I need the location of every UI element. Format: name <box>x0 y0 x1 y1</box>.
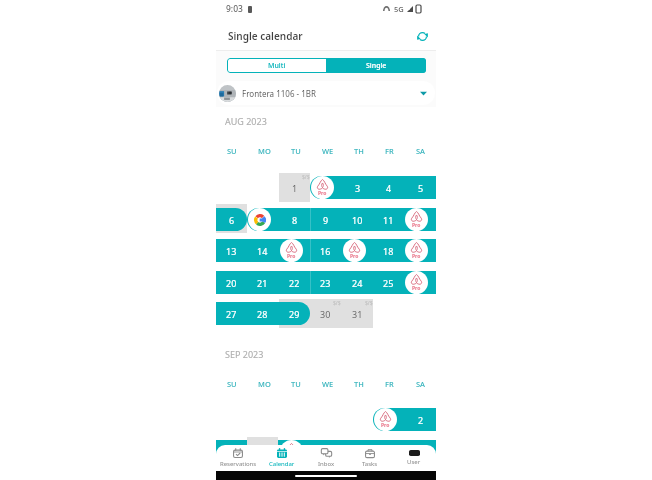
staticText: 14 <box>257 245 268 257</box>
staticText: $/$ <box>333 300 341 307</box>
staticText: Reservations <box>220 460 257 468</box>
staticText: Pro <box>350 253 359 260</box>
button[interactable]: Refresh <box>414 28 430 44</box>
button[interactable] <box>373 408 436 431</box>
staticText: SA <box>416 146 426 156</box>
staticText: Multi <box>268 61 286 71</box>
staticText: Calendar <box>269 460 295 468</box>
staticText: Pro <box>381 422 390 429</box>
staticText: Pro <box>287 253 296 260</box>
button[interactable]: Airbnb Pro booking <box>374 408 397 431</box>
button[interactable]: Calendar <box>260 445 304 471</box>
button[interactable]: User <box>392 445 436 471</box>
staticText: SU <box>227 146 237 156</box>
staticText: 20 <box>226 277 237 289</box>
staticText: Single <box>366 61 387 71</box>
staticText: TH <box>354 146 364 156</box>
staticText: Inbox <box>318 460 335 468</box>
button[interactable] <box>216 239 436 262</box>
staticText: Pro <box>412 253 421 260</box>
button[interactable]: Airbnb Pro booking <box>343 239 366 262</box>
staticText: WE <box>322 379 334 389</box>
button[interactable] <box>247 208 436 231</box>
staticText: Single calendar <box>228 29 303 43</box>
staticText: AUG 2023 <box>225 115 267 127</box>
staticText: 2 <box>418 414 424 426</box>
staticText: FR <box>385 146 394 156</box>
staticText: 11 <box>383 214 394 226</box>
staticText: Pro <box>412 222 421 229</box>
button[interactable] <box>310 176 436 199</box>
button[interactable] <box>216 208 247 231</box>
staticText: 5 <box>418 182 424 194</box>
button[interactable]: Airbnb Pro booking <box>280 440 303 463</box>
staticText: FR <box>385 379 394 389</box>
button[interactable]: Airbnb Pro booking <box>405 208 428 231</box>
staticText: 16 <box>320 245 331 257</box>
staticText: SA <box>416 379 426 389</box>
staticText: 13 <box>226 245 237 257</box>
staticText: 28 <box>257 308 268 320</box>
staticText: SEP 2023 <box>225 348 264 360</box>
staticText: 6 <box>229 214 235 226</box>
staticText: 4 <box>386 182 392 194</box>
button[interactable]: Airbnb Pro booking <box>405 271 428 294</box>
staticText: MO <box>258 379 271 389</box>
staticText: 18 <box>383 245 394 257</box>
staticText: TU <box>291 146 301 156</box>
staticText: 27 <box>226 308 237 320</box>
button[interactable]: Google booking <box>248 208 271 231</box>
staticText: 1 <box>292 182 298 194</box>
staticText: 3 <box>229 446 235 458</box>
staticText: SU <box>227 379 237 389</box>
staticText: $/$ <box>365 300 373 307</box>
staticText: $/$ <box>302 174 310 181</box>
button[interactable] <box>216 440 436 463</box>
staticText: MO <box>258 146 271 156</box>
staticText: TU <box>291 379 301 389</box>
staticText: 31 <box>352 308 363 320</box>
staticText: 23 <box>320 277 331 289</box>
staticText: WE <box>322 146 334 156</box>
staticText: 3 <box>355 182 361 194</box>
staticText: 21 <box>257 277 268 289</box>
button[interactable]: Airbnb Pro booking <box>311 176 334 199</box>
button[interactable]: Airbnb Pro booking <box>280 239 303 262</box>
button[interactable] <box>216 271 436 294</box>
staticText: 22 <box>289 277 300 289</box>
staticText: 29 <box>289 308 300 320</box>
staticText: Tasks <box>362 460 378 468</box>
button[interactable]: Tasks <box>348 445 392 471</box>
button[interactable] <box>216 302 310 325</box>
button[interactable]: Single calendar <box>216 22 436 50</box>
button[interactable]: Reservations <box>216 445 260 471</box>
staticText: 25 <box>383 277 394 289</box>
button[interactable]: Airbnb Pro booking <box>405 239 428 262</box>
staticText: 5G <box>394 4 404 14</box>
button[interactable]: Single <box>326 58 426 73</box>
button[interactable]: Multi <box>227 58 326 73</box>
staticText: 30 <box>320 308 331 320</box>
staticText: 9 <box>323 214 329 226</box>
staticText: Pro <box>318 190 327 197</box>
staticText: 9:03 <box>226 3 243 15</box>
staticText: 10 <box>352 214 363 226</box>
button[interactable]: Frontera 1106 - 1BR <box>217 81 435 105</box>
staticText: Pro <box>412 285 421 292</box>
staticText: 24 <box>352 277 363 289</box>
staticText: TH <box>354 379 364 389</box>
staticText: User <box>407 458 421 466</box>
staticText: 8 <box>292 214 298 226</box>
staticText: Frontera 1106 - 1BR <box>242 88 316 99</box>
button[interactable]: Inbox <box>304 445 348 471</box>
